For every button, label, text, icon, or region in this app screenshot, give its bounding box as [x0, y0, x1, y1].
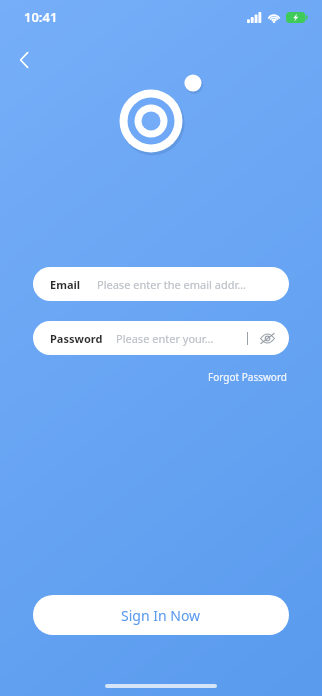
staticText: Sign In Now: [121, 606, 201, 625]
button[interactable]: Show password: [257, 328, 277, 348]
button[interactable]: Forgot Password: [206, 368, 289, 386]
staticText: 10:41: [24, 8, 58, 26]
staticText: Please enter the email addr…: [97, 277, 277, 292]
button[interactable]: Back: [8, 44, 40, 76]
button[interactable]: Sign In Now: [33, 595, 289, 635]
button[interactable]: Password: [33, 321, 289, 355]
staticText: Password: [50, 331, 103, 346]
staticText: Please enter your…: [116, 331, 244, 346]
staticText: Email: [50, 277, 81, 292]
button[interactable]: Email: [33, 267, 289, 301]
